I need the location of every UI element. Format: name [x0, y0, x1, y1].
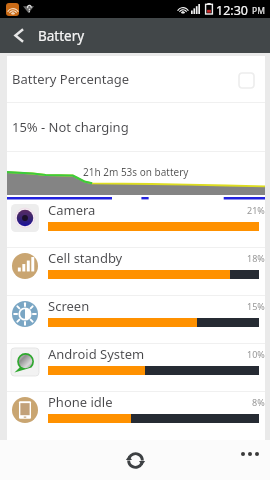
button[interactable]: Refresh — [121, 446, 149, 474]
staticText: Cell standby — [48, 249, 123, 267]
button[interactable]: More options — [237, 452, 263, 474]
staticText: Battery Percentage — [12, 70, 130, 88]
staticText: PM — [252, 5, 265, 17]
staticText: 18% — [247, 252, 265, 264]
staticText: 10% — [247, 348, 265, 360]
staticText: 8% — [252, 396, 265, 408]
staticText: Camera — [48, 201, 96, 219]
button[interactable]: Navigate up — [0, 18, 36, 53]
button[interactable]: Phone idle — [7, 392, 265, 439]
button[interactable]: Battery Percentage — [7, 56, 265, 102]
button[interactable]: Camera — [7, 200, 265, 247]
staticText: Battery — [38, 27, 85, 45]
staticText: 15% - Not charging — [12, 118, 129, 136]
button[interactable]: Android System — [7, 344, 265, 391]
staticText: Phone idle — [48, 393, 113, 411]
staticText: 12:30 — [216, 2, 248, 19]
staticText: Android System — [48, 345, 145, 363]
staticText: 15% — [247, 300, 265, 312]
staticText: 21h 2m 53s on battery — [83, 165, 189, 179]
button[interactable]: Cell standby — [7, 248, 265, 295]
button[interactable]: Screen — [7, 296, 265, 343]
staticText: 21% — [247, 204, 265, 216]
staticText: Screen — [48, 297, 90, 315]
